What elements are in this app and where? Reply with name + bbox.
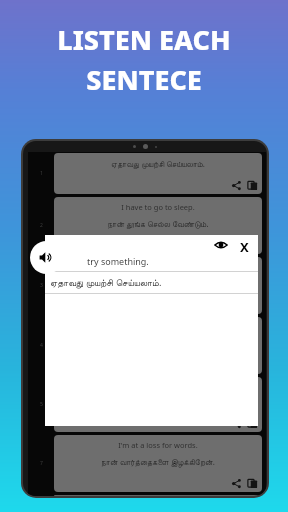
staticText: LISTEN EACH [57,21,231,58]
button[interactable]: 5 [28,377,266,432]
staticText: SENTECE [86,61,202,98]
staticText: 4 [40,342,43,349]
staticText: 2 [40,222,43,229]
button[interactable]: 7 [28,435,266,492]
button[interactable]: Copy [247,418,258,429]
staticText: நான் வார்த்தைகளை இழக்கிறேன். [101,456,215,467]
button[interactable]: Close [237,238,251,252]
staticText: நான் தூங்க செல்ல வேண்டும். [107,218,209,229]
button[interactable]: Share [231,478,242,489]
staticText: I have to go to sleep. [121,202,195,212]
staticText: try something. [87,255,149,267]
staticText: ஏதாவது முயற்சி செய்யலாம். [111,158,205,169]
button[interactable]: 3 [28,257,266,314]
staticText: 3 [40,282,43,289]
button[interactable]: Share [231,418,242,429]
staticText: 5 [40,401,43,408]
button[interactable]: Copy [247,180,258,191]
button[interactable]: Play audio [30,241,63,274]
button[interactable]: Copy [247,478,258,489]
staticText: ஏதாவது முயற்சி செய்யலாம். [50,276,162,289]
staticText: 7 [40,460,43,467]
button[interactable]: Share [231,240,242,251]
button[interactable]: 1 [28,153,266,194]
button[interactable]: Share [231,180,242,191]
button[interactable]: This is never going to end. [28,495,266,496]
button[interactable]: Show translation [214,238,228,252]
staticText: I'm at a loss for words. [118,440,198,450]
staticText: X [240,238,249,252]
button[interactable]: Copy [247,240,258,251]
button[interactable]: 4 [28,317,266,374]
staticText: 1 [40,170,43,177]
button[interactable]: 2 [28,197,266,254]
